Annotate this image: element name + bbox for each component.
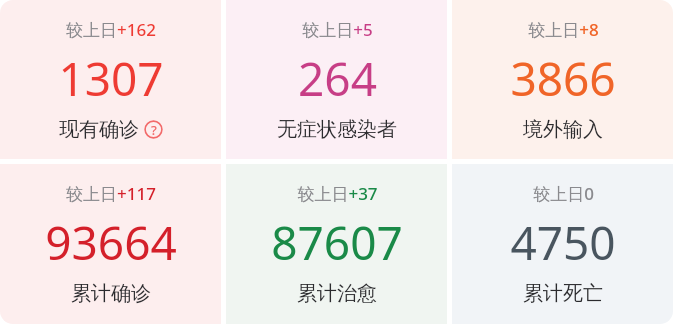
staticText: 现有确诊: [59, 117, 139, 142]
button[interactable]: 较上日+37: [226, 164, 447, 324]
staticText: 较上日+37: [297, 182, 378, 205]
staticText: 累计确诊: [71, 281, 151, 306]
staticText: 4750: [510, 211, 616, 274]
staticText: 较上日0: [533, 182, 594, 205]
staticText: 264: [298, 47, 377, 110]
staticText: 较上日+8: [528, 18, 599, 41]
button[interactable]: 较上日+5: [226, 0, 447, 159]
staticText: 3866: [510, 47, 616, 110]
staticText: 较上日+162: [66, 18, 156, 41]
button[interactable]: 较上日0: [452, 164, 673, 324]
staticText: 87607: [271, 211, 403, 274]
staticText: 1307: [58, 47, 164, 110]
button[interactable]: 较上日+117: [0, 164, 221, 324]
staticText: 累计死亡: [523, 281, 603, 306]
staticText: 较上日+5: [302, 18, 373, 41]
button[interactable]: 说明: [144, 120, 163, 139]
button[interactable]: 较上日+162: [0, 0, 221, 159]
button[interactable]: 较上日+8: [452, 0, 673, 159]
staticText: 93664: [45, 211, 177, 274]
staticText: 较上日+117: [66, 182, 156, 205]
staticText: ?: [151, 121, 157, 139]
staticText: 无症状感染者: [277, 117, 397, 142]
staticText: 累计治愈: [297, 281, 377, 306]
staticText: 境外输入: [523, 117, 603, 142]
